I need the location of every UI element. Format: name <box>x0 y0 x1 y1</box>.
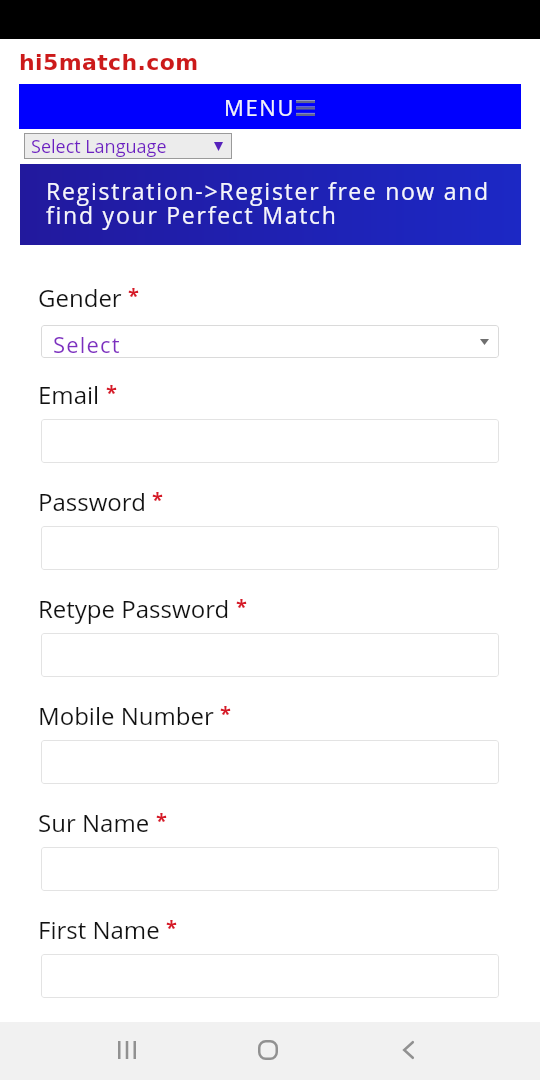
staticText: * <box>152 486 163 513</box>
button[interactable]: Select Language <box>24 133 232 159</box>
button[interactable] <box>41 740 499 784</box>
button[interactable] <box>41 419 499 463</box>
staticText: * <box>220 700 231 727</box>
staticText: Select <box>53 329 121 358</box>
staticText: * <box>166 914 177 941</box>
button[interactable] <box>41 847 499 891</box>
staticText: * <box>156 807 167 834</box>
button[interactable] <box>41 526 499 570</box>
staticText: First Name <box>38 913 160 946</box>
staticText: find your Perfect Match <box>46 199 338 230</box>
staticText: Email <box>38 378 100 411</box>
staticText: Gender <box>38 281 122 314</box>
button[interactable] <box>41 954 499 998</box>
staticText: Mobile Number <box>38 699 214 732</box>
staticText: Select Language <box>31 134 167 159</box>
button[interactable]: Back <box>369 1020 447 1079</box>
staticText: Registration->Register free now and <box>46 175 490 206</box>
button[interactable] <box>41 633 499 677</box>
button[interactable]: Recent apps <box>88 1020 166 1079</box>
staticText: * <box>128 282 139 309</box>
staticText: Sur Name <box>38 806 150 839</box>
staticText: MENU <box>224 92 296 122</box>
button[interactable]: Select <box>41 325 499 358</box>
button[interactable]: MENU <box>19 84 521 129</box>
button[interactable]: Home <box>229 1020 307 1079</box>
staticText: * <box>106 379 117 406</box>
staticText: Password <box>38 485 146 518</box>
staticText: hi5match.com <box>19 50 199 76</box>
staticText: Retype Password <box>38 592 230 625</box>
staticText: * <box>236 593 247 620</box>
